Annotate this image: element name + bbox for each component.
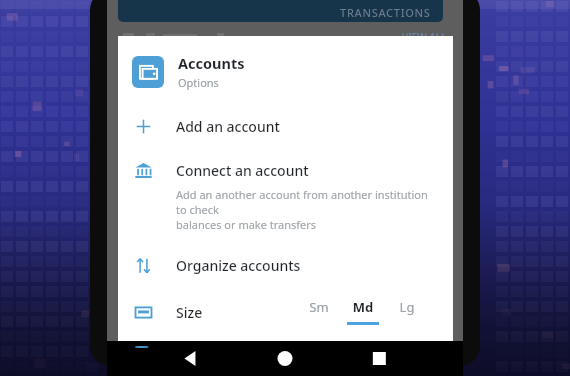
staticText: Lg xyxy=(391,298,423,316)
button[interactable]: Size xyxy=(132,301,203,323)
staticText: VIEW ALL xyxy=(402,30,447,44)
staticText: Add an another account from another inst… xyxy=(176,187,439,232)
staticText: Organize accounts xyxy=(176,256,301,275)
staticText: Md xyxy=(347,298,379,316)
button[interactable]: Organize accounts xyxy=(118,243,453,287)
button[interactable]: Sm xyxy=(303,298,335,325)
button[interactable]: Recent apps xyxy=(363,341,463,376)
button[interactable]: Lg xyxy=(391,298,423,325)
button[interactable]: Accounts xyxy=(118,51,453,92)
staticText: Accounts xyxy=(178,53,245,73)
button[interactable]: Md xyxy=(347,298,379,325)
staticText: Sm xyxy=(303,298,335,316)
staticText: Options xyxy=(178,75,219,90)
staticText: Connect an account xyxy=(176,161,309,180)
button[interactable]: Back xyxy=(107,341,207,376)
staticText: Size xyxy=(176,303,203,322)
staticText: Add an account xyxy=(176,117,280,136)
button[interactable]: Add an account xyxy=(118,104,453,148)
staticText: TRANSACTIONS xyxy=(340,5,431,20)
button[interactable]: Home xyxy=(235,341,335,376)
button[interactable]: Connect an account xyxy=(118,148,453,243)
